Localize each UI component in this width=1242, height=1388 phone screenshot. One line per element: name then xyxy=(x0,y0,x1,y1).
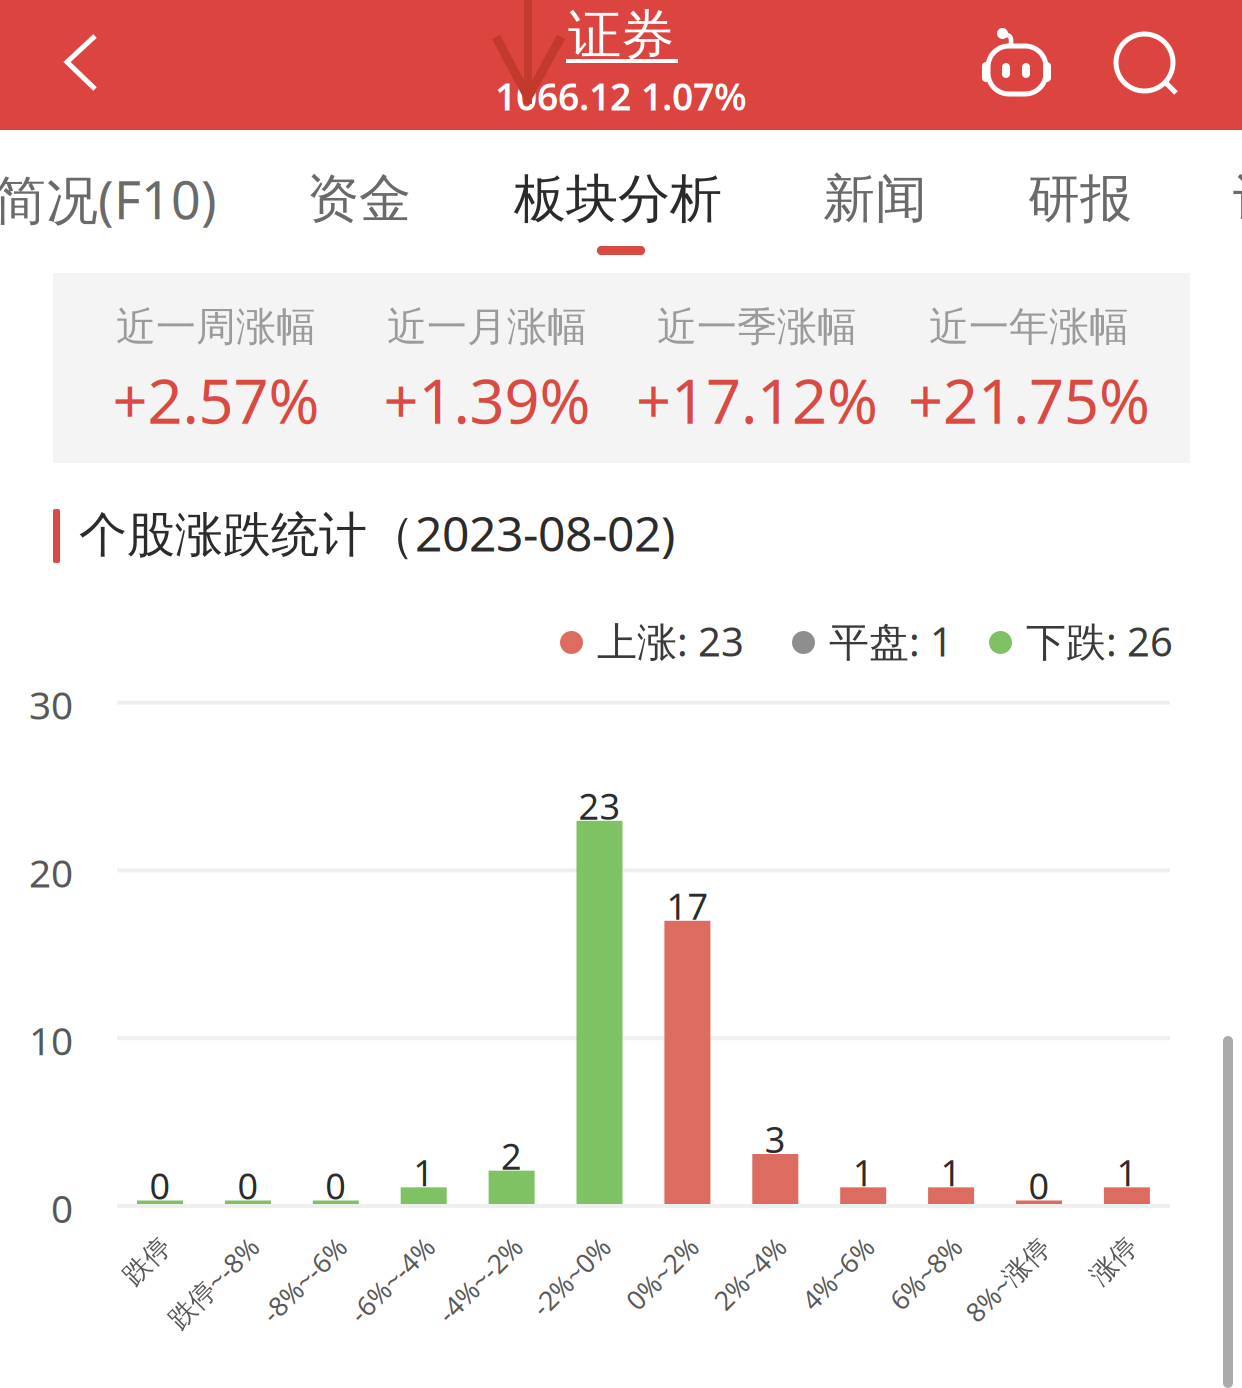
staticText: 17 xyxy=(666,882,708,930)
staticText: +17.12% xyxy=(636,359,878,441)
staticText: -2%~0% xyxy=(543,1309,641,1344)
staticText: 新闻 xyxy=(823,167,927,231)
staticText: 1 xyxy=(413,1148,434,1196)
staticText: 0 xyxy=(237,1162,258,1209)
staticText: +1.39% xyxy=(383,359,590,441)
button[interactable]: Search xyxy=(1082,0,1212,130)
staticText: 个股涨跌统计（2023-08-02) xyxy=(79,501,675,565)
staticText: 0%~2% xyxy=(639,1309,728,1344)
staticText: 0 xyxy=(149,1162,170,1209)
staticText: -4%~-2% xyxy=(446,1309,553,1344)
staticText: 6%~8% xyxy=(903,1309,992,1344)
staticText: 10 xyxy=(29,1014,73,1066)
button[interactable]: 资金 xyxy=(307,130,411,273)
staticText: 1 xyxy=(853,1148,874,1196)
staticText: 0 xyxy=(51,1182,73,1234)
staticText: 跌停~-8% xyxy=(174,1309,289,1344)
staticText: 下跌: 26 xyxy=(1026,614,1173,667)
button[interactable]: 讨 xyxy=(1233,130,1242,273)
staticText: 讨 xyxy=(1233,167,1242,231)
staticText: 0 xyxy=(1028,1162,1049,1209)
staticText: 8%~涨停 xyxy=(974,1309,1080,1344)
staticText: 跌停 xyxy=(147,1310,201,1343)
staticText: 近一周涨幅 xyxy=(116,302,316,351)
staticText: 板块分析 xyxy=(514,167,722,231)
staticText: 1066.12 1.07% xyxy=(495,71,747,121)
button[interactable]: 板块分析 xyxy=(514,130,722,273)
staticText: 30 xyxy=(29,679,73,730)
button[interactable]: AI assistant xyxy=(952,0,1082,130)
staticText: 20 xyxy=(29,847,73,898)
staticText: 1 xyxy=(1116,1148,1137,1196)
button[interactable]: 简况(F10) xyxy=(0,130,216,273)
staticText: 2 xyxy=(501,1132,522,1180)
staticText: -6%~-4% xyxy=(358,1309,465,1344)
staticText: 23 xyxy=(578,782,620,830)
staticText: 近一月涨幅 xyxy=(387,302,587,351)
staticText: 0 xyxy=(325,1162,346,1209)
staticText: +21.75% xyxy=(908,359,1150,441)
staticText: 平盘: 1 xyxy=(829,614,953,667)
staticText: 1 xyxy=(941,1148,962,1196)
staticText: 研报 xyxy=(1028,167,1132,231)
staticText: 2%~4% xyxy=(727,1309,816,1344)
staticText: 简况(F10) xyxy=(0,164,217,234)
staticText: 上涨: 23 xyxy=(597,614,744,667)
button[interactable]: 研报 xyxy=(1028,130,1136,273)
staticText: 近一年涨幅 xyxy=(929,302,1129,351)
staticText: -8%~-6% xyxy=(270,1309,377,1344)
staticText: 3 xyxy=(765,1115,786,1163)
staticText: +2.57% xyxy=(112,359,319,441)
button[interactable]: Back xyxy=(10,0,140,130)
staticText: 证券 xyxy=(568,2,674,68)
staticText: 资金 xyxy=(307,167,411,231)
button[interactable]: 新闻 xyxy=(823,130,927,273)
staticText: 近一季涨幅 xyxy=(657,302,857,351)
